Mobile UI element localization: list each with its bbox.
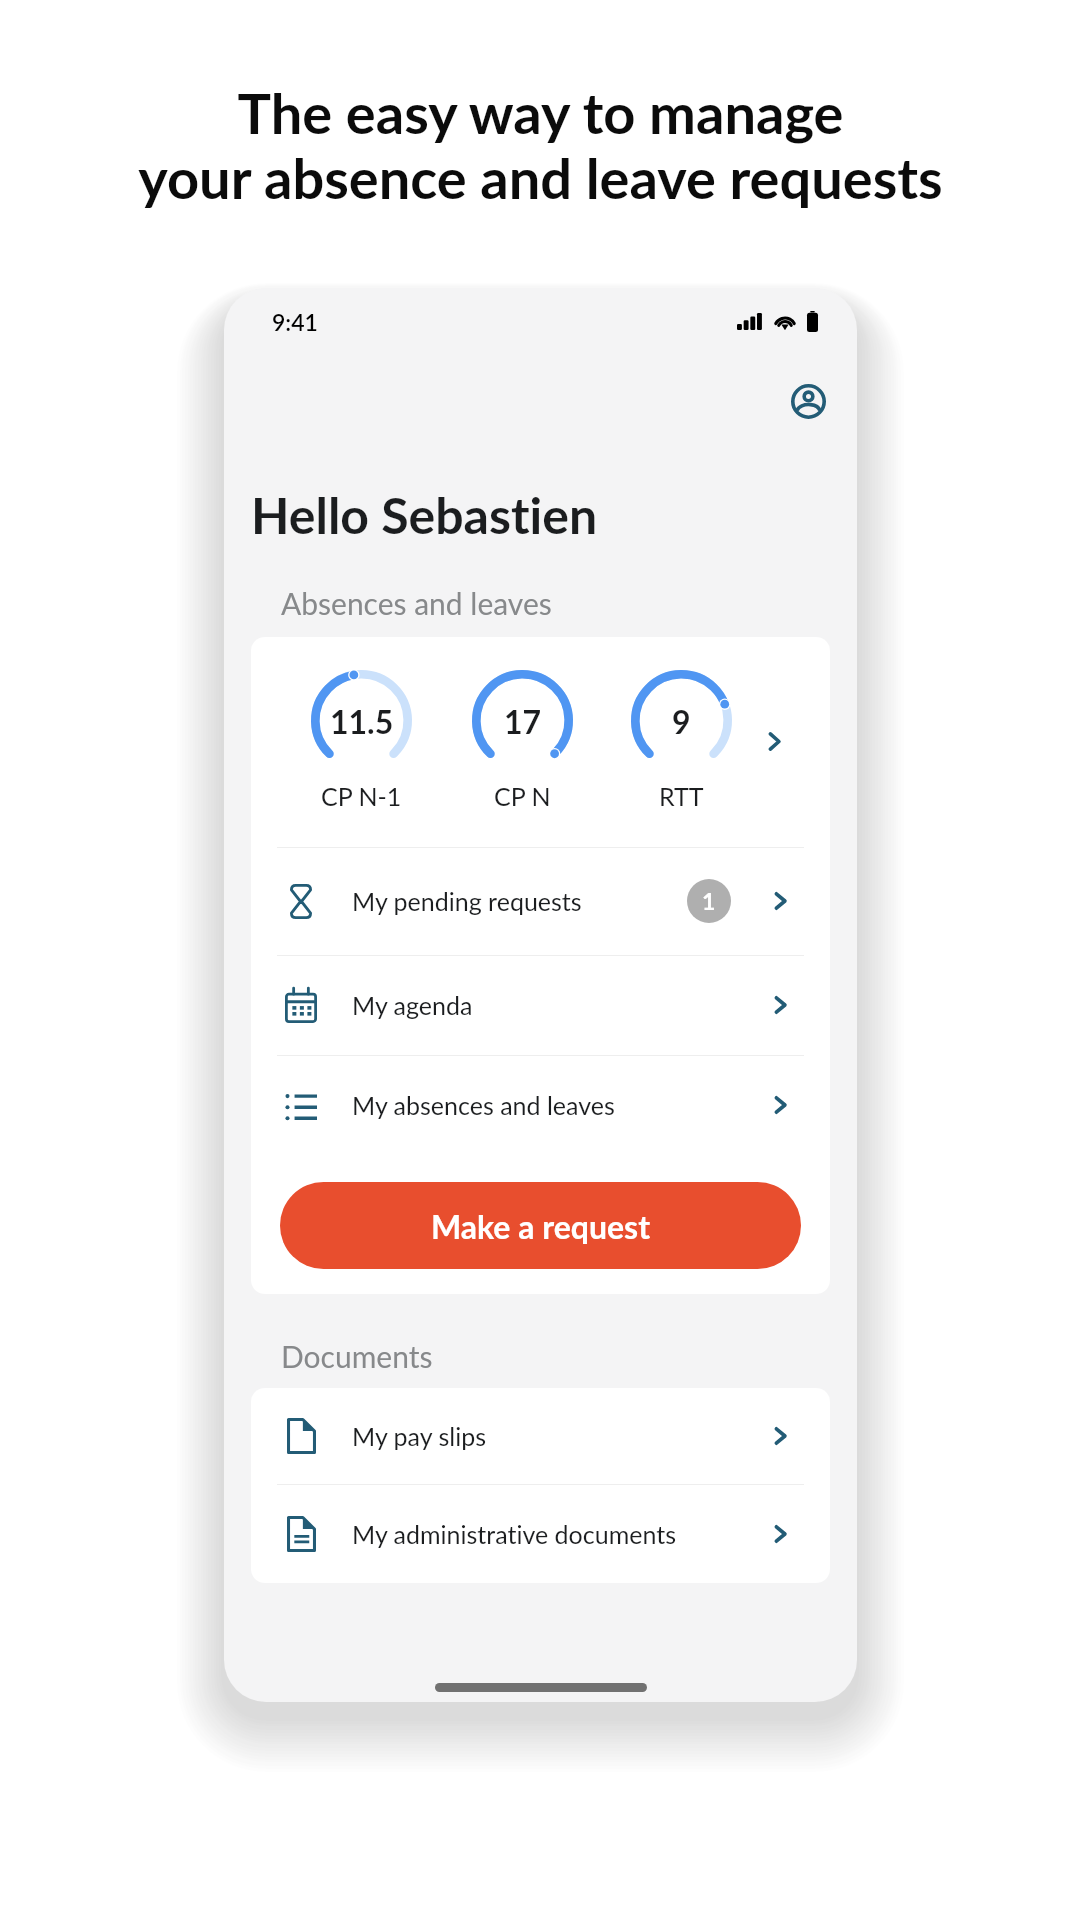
staticText: My pending requests — [352, 886, 582, 916]
staticText: 9:41 — [272, 308, 318, 336]
staticText: Documents — [281, 1338, 433, 1374]
button[interactable]: My agenda — [251, 955, 830, 1055]
staticText: Absences and leaves — [281, 585, 552, 621]
button[interactable]: Account — [780, 373, 836, 429]
button[interactable]: Make a request — [280, 1182, 801, 1269]
staticText: CP N — [494, 781, 551, 811]
staticText: My administrative documents — [352, 1519, 676, 1549]
staticText: 1 — [702, 887, 716, 915]
button[interactable]: My pay slips — [251, 1388, 830, 1484]
staticText: CP N-1 — [321, 781, 402, 811]
button[interactable]: My absences and leaves — [251, 1055, 830, 1155]
button[interactable]: My administrative documents — [251, 1484, 830, 1583]
button[interactable]: 11.5 — [251, 637, 830, 837]
staticText: 9 — [672, 702, 691, 740]
staticText: RTT — [659, 781, 704, 811]
staticText: The easy way to manage your absence and … — [138, 79, 943, 211]
staticText: My agenda — [352, 990, 473, 1020]
staticText: 17 — [504, 702, 542, 740]
staticText: My absences and leaves — [352, 1090, 615, 1120]
staticText: Make a request — [431, 1207, 651, 1245]
staticText: My pay slips — [352, 1421, 486, 1451]
staticText: Hello Sebastien — [251, 485, 598, 545]
button[interactable]: My pending requests — [251, 847, 830, 955]
staticText: 11.5 — [330, 702, 394, 740]
